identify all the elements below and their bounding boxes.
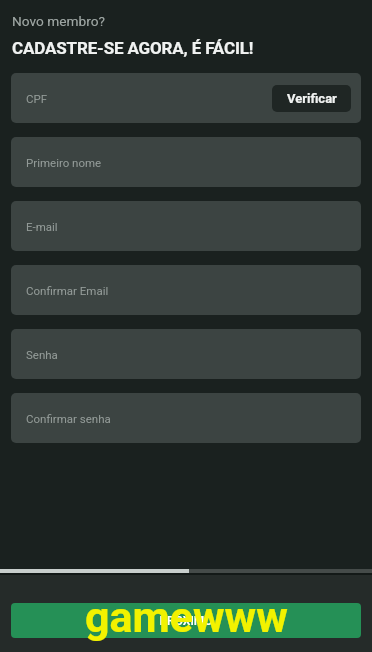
other: Progresso do cadastro <box>0 569 372 573</box>
staticText: CADASTRE-SE AGORA, É FÁCIL! <box>12 38 254 58</box>
button[interactable]: E-mail <box>11 201 361 251</box>
staticText: PRÓXIMO <box>159 614 213 628</box>
staticText: Senha <box>26 348 58 361</box>
button[interactable]: Confirmar Email <box>11 265 361 315</box>
staticText: Primeiro nome <box>26 156 102 169</box>
staticText: Novo membro? <box>12 13 105 29</box>
staticText: Confirmar Email <box>26 284 109 297</box>
button[interactable]: CPF <box>11 73 361 123</box>
button[interactable]: Verificar <box>272 85 351 112</box>
staticText: E-mail <box>26 220 58 233</box>
staticText: Verificar <box>287 91 337 106</box>
button[interactable]: Senha <box>11 329 361 379</box>
button[interactable]: Primeiro nome <box>11 137 361 187</box>
button[interactable]: Confirmar senha <box>11 393 361 443</box>
staticText: gamewww <box>85 592 288 642</box>
button[interactable]: PRÓXIMO <box>11 603 361 638</box>
staticText: CPF <box>26 92 48 105</box>
staticText: Confirmar senha <box>26 412 111 425</box>
